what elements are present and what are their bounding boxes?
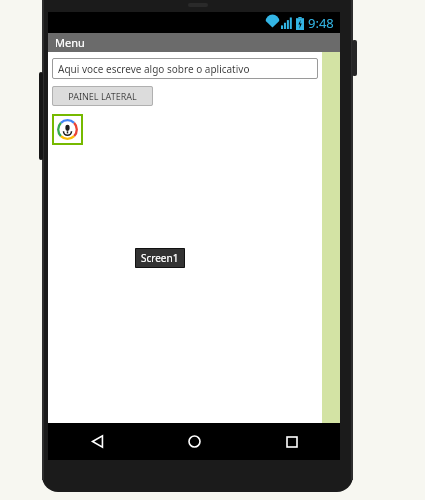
button[interactable]: Menu <box>48 33 340 52</box>
button[interactable]: Home <box>146 423 243 460</box>
button[interactable]: Back <box>48 423 146 460</box>
button[interactable]: Aqui voce escreve algo sobre o aplicativ… <box>52 58 318 79</box>
button[interactable]: Recent apps <box>243 423 340 460</box>
staticText: PAINEL LATERAL <box>68 90 137 102</box>
staticText: Menu <box>55 35 85 50</box>
button[interactable]: PAINEL LATERAL <box>52 86 153 106</box>
staticText: Screen1 <box>141 251 179 265</box>
button[interactable]: Screen1 <box>141 251 179 265</box>
button[interactable]: Speech recognizer <box>52 114 83 145</box>
staticText: Aqui voce escreve algo sobre o aplicativ… <box>58 62 250 76</box>
staticText: 9:48 <box>308 14 334 32</box>
